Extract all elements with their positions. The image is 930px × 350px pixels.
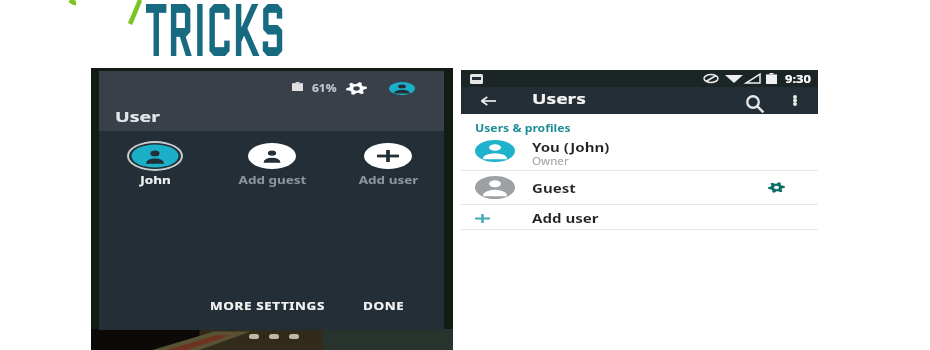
staticText: Add user [532, 209, 599, 227]
staticText: User [115, 106, 160, 126]
staticText: Add guest [238, 173, 307, 187]
button[interactable]: Search [743, 89, 767, 113]
button[interactable]: Guest settings [764, 175, 788, 199]
staticText: Owner [532, 154, 569, 168]
button[interactable]: Back [475, 89, 501, 113]
button[interactable]: DONE [358, 292, 408, 312]
button[interactable]: You (John) [461, 114, 818, 170]
staticText: Users & profiles [475, 121, 571, 135]
button[interactable]: Settings [343, 77, 369, 99]
staticText: Add user [358, 173, 419, 187]
button[interactable]: Add user [461, 205, 818, 229]
staticText: 61% [312, 81, 337, 95]
button[interactable]: More options [787, 89, 803, 111]
button[interactable]: MORE SETTINGS [205, 292, 326, 312]
staticText: TRICKS [145, 0, 286, 82]
button[interactable]: Add user [356, 140, 420, 187]
staticText: MORE SETTINGS [210, 298, 326, 313]
staticText: Users [532, 88, 587, 108]
staticText: You (John) [532, 138, 610, 156]
staticText: 9:30 [785, 71, 811, 86]
staticText: John [140, 173, 171, 187]
button[interactable]: John [123, 140, 187, 187]
staticText: DONE [363, 298, 404, 313]
button[interactable]: Add guest [240, 140, 304, 187]
button[interactable]: Current user [389, 77, 415, 99]
staticText: Guest [532, 179, 576, 197]
button[interactable]: Guest [461, 171, 818, 204]
